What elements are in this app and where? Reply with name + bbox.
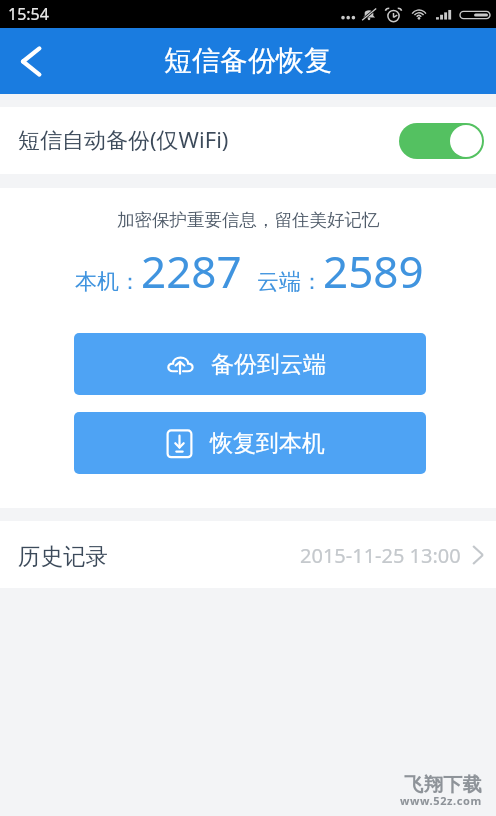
button[interactable]: 短信自动备份(仅WiFi) <box>0 107 496 174</box>
staticText: 短信自动备份(仅WiFi) <box>18 124 229 154</box>
staticText: 本机： <box>75 268 141 296</box>
staticText: 备份到云端 <box>211 350 326 379</box>
staticText: 云端： <box>257 268 323 296</box>
staticText: 历史记录 <box>18 542 108 570</box>
staticText: 短信备份恢复 <box>164 43 332 78</box>
button[interactable]: Auto backup toggle, on <box>399 123 484 159</box>
staticText: 加密保护重要信息，留住美好记忆 <box>117 209 380 231</box>
button[interactable]: 恢复到本机 <box>74 412 426 474</box>
staticText: 2015-11-25 13:00 <box>300 542 461 569</box>
staticText: www.52z.com <box>400 793 482 808</box>
staticText: 2287 <box>141 241 242 301</box>
staticText: 飞翔下载 <box>404 773 482 797</box>
staticText: 15:54 <box>8 3 49 25</box>
button[interactable]: Back <box>0 28 62 94</box>
staticText: 恢复到本机 <box>210 429 325 458</box>
button[interactable]: 备份到云端 <box>74 333 426 395</box>
staticText: 2589 <box>323 241 424 301</box>
button[interactable]: 历史记录 <box>0 521 496 588</box>
